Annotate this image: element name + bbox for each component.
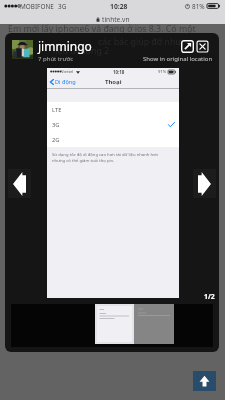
button[interactable]: LTE — [47, 102, 179, 117]
staticText: 10:18 — [113, 69, 125, 75]
staticText: Viettel — [61, 69, 74, 75]
staticText: tinhte.vn — [102, 15, 130, 24]
staticText: MOBIFONE — [20, 2, 54, 11]
staticText: liệu di động 2 — [53, 45, 110, 57]
button[interactable] — [95, 304, 134, 344]
staticText: Di động — [55, 78, 76, 86]
button[interactable]: 2G — [47, 132, 179, 147]
button[interactable]: 3G — [47, 117, 179, 132]
button[interactable]: Close — [196, 40, 209, 53]
staticText: 7 phút trước — [38, 55, 74, 63]
staticText: Thoại — [105, 78, 122, 86]
staticText: 91% — [158, 69, 167, 75]
staticText: 81% — [192, 2, 205, 11]
staticText: 3G — [58, 2, 67, 11]
staticText: 10:28 — [110, 2, 128, 11]
staticText: LTE — [52, 106, 62, 114]
button[interactable]: Next image — [193, 169, 216, 198]
button[interactable]: Scroll to top — [193, 371, 216, 391]
staticText: Em mới lấy iphone6 và đang ở ios 8.3. Có… — [8, 23, 196, 35]
staticText: Sử dụng tốc độ di động cao hơn tải dữ li… — [52, 152, 159, 163]
button[interactable]: Show in original location — [143, 55, 213, 63]
button[interactable] — [134, 304, 174, 344]
staticText: 1/2 — [204, 292, 215, 301]
button[interactable]: Open in new window — [181, 40, 194, 53]
staticText: 3G — [52, 121, 60, 129]
button[interactable]: Previous image — [8, 169, 31, 198]
staticText: các bác giúp đỡ như — [98, 36, 182, 48]
staticText: jimmingo — [38, 38, 92, 54]
staticText: 2G — [52, 136, 60, 144]
